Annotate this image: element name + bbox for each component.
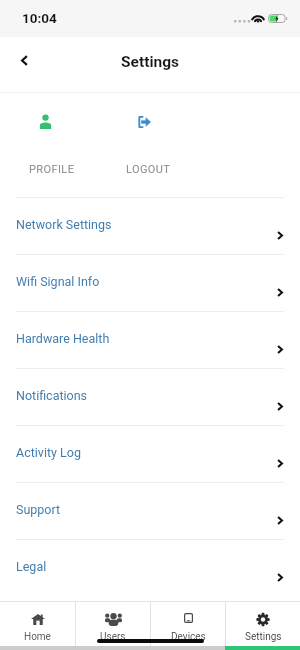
staticText: Settings bbox=[245, 631, 282, 643]
button[interactable]: Settings bbox=[226, 602, 300, 646]
staticText: LOGOUT bbox=[126, 163, 171, 176]
staticText: Legal bbox=[16, 559, 47, 574]
button[interactable]: Home bbox=[0, 602, 75, 646]
button[interactable]: Notifications bbox=[0, 368, 300, 425]
staticText: PROFILE bbox=[29, 163, 75, 176]
staticText: Users bbox=[100, 631, 126, 643]
staticText: 10:04 bbox=[22, 10, 57, 26]
button[interactable]: PROFILE bbox=[16, 100, 112, 190]
button[interactable]: Hardware Health bbox=[0, 311, 300, 368]
staticText: Network Settings bbox=[16, 217, 112, 232]
staticText: Devices bbox=[171, 631, 206, 643]
staticText: Support bbox=[16, 502, 61, 517]
staticText: Settings bbox=[121, 53, 180, 71]
button[interactable]: Support bbox=[0, 482, 300, 539]
staticText: Home bbox=[24, 631, 51, 643]
staticText: Hardware Health bbox=[16, 331, 110, 346]
button[interactable]: Devices bbox=[151, 602, 225, 646]
button[interactable]: Wifi Signal Info bbox=[0, 254, 300, 311]
staticText: Activity Log bbox=[16, 445, 81, 460]
staticText: Notifications bbox=[16, 388, 88, 403]
button[interactable]: LOGOUT bbox=[112, 100, 208, 190]
button[interactable]: Network Settings bbox=[0, 197, 300, 254]
button[interactable]: Back bbox=[6, 42, 42, 78]
button[interactable]: Users bbox=[76, 602, 150, 646]
button[interactable]: Activity Log bbox=[0, 425, 300, 482]
staticText: Wifi Signal Info bbox=[16, 274, 100, 289]
button[interactable]: Legal bbox=[0, 539, 300, 596]
